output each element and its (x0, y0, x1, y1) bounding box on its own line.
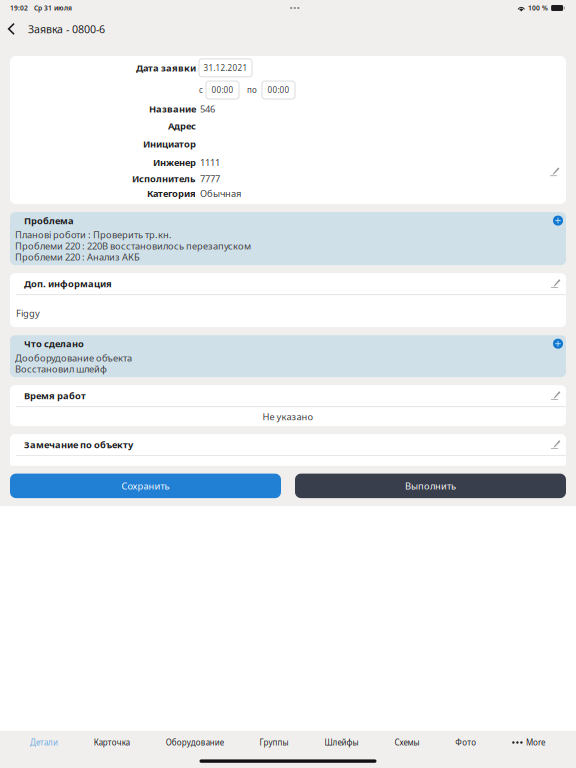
button[interactable]: Add (547, 339, 566, 349)
button[interactable]: Сохранить (10, 474, 281, 498)
staticText: Фото (455, 737, 476, 748)
staticText: Сохранить (121, 480, 169, 492)
button[interactable]: Edit (544, 391, 566, 400)
staticText: Инженер (153, 156, 196, 169)
button[interactable]: Группы (254, 728, 295, 757)
button[interactable]: Back (0, 16, 28, 42)
staticText: 100 % (528, 4, 548, 12)
staticText: с (199, 85, 203, 95)
staticText: 546 (200, 103, 215, 115)
button[interactable]: Выполнить (295, 474, 566, 498)
staticText: Замечание по объекту (24, 438, 133, 451)
staticText: More (526, 737, 546, 748)
staticText: Схемы (394, 737, 419, 748)
button[interactable]: Edit (543, 56, 566, 177)
button[interactable]: Детали (24, 728, 64, 757)
staticText: Карточка (94, 737, 130, 748)
staticText: 00:00 (267, 85, 289, 95)
staticText: Оборудование (166, 737, 224, 748)
button[interactable]: Схемы (388, 728, 425, 757)
button[interactable]: Add (547, 216, 566, 226)
button[interactable]: Фото (449, 728, 482, 757)
staticText: Обычная (200, 187, 241, 199)
staticText: Проблеми 220 : Анализ АКБ (15, 251, 140, 263)
staticText: Группы (260, 737, 289, 748)
staticText: Инициатор (143, 138, 196, 150)
staticText: Восстановил шлейф (15, 363, 107, 375)
staticText: Ср 31 июля (34, 4, 72, 12)
staticText: Адрес (168, 120, 196, 132)
staticText: Заявка - 0800-6 (28, 22, 105, 36)
staticText: Дата заявки (136, 62, 196, 74)
staticText: Не указано (262, 410, 313, 423)
staticText: Время работ (24, 389, 86, 402)
staticText: Выполнить (405, 480, 456, 492)
staticText: Доп. информация (24, 277, 112, 290)
button[interactable]: More (506, 728, 552, 757)
staticText: Что сделано (24, 337, 84, 350)
button[interactable]: Edit (544, 440, 566, 449)
staticText: 1111 (200, 156, 220, 169)
button[interactable]: Шлейфы (318, 728, 364, 757)
staticText: Figgy (16, 307, 40, 319)
staticText: Дооборудование объекта (15, 352, 132, 364)
staticText: Шлейфы (324, 737, 358, 748)
staticText: по (247, 85, 257, 95)
staticText: Исполнитель (132, 172, 196, 185)
staticText: 19:02 (10, 4, 28, 12)
staticText: Планові роботи : Проверить тр.кн. (15, 229, 172, 241)
staticText: Детали (30, 737, 58, 748)
staticText: Категория (147, 187, 196, 199)
button[interactable]: Оборудование (160, 728, 230, 757)
staticText: 7777 (200, 172, 220, 185)
staticText: Название (149, 103, 196, 115)
button[interactable]: Карточка (88, 728, 136, 757)
button[interactable]: Edit (544, 279, 566, 288)
staticText: Проблема (24, 214, 74, 227)
staticText: 00:00 (211, 85, 233, 95)
staticText: 31.12.2021 (203, 62, 247, 73)
staticText: Проблеми 220 : 220В восстановилось перез… (15, 240, 251, 252)
